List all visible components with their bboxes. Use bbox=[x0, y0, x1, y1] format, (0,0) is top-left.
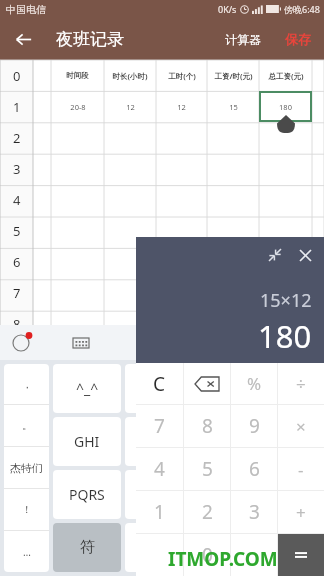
staticText: 6 bbox=[249, 456, 260, 482]
staticText: - bbox=[298, 458, 304, 481]
staticText: 杰特们 bbox=[10, 461, 43, 475]
staticText: 15 bbox=[229, 102, 238, 112]
button[interactable]: - bbox=[278, 448, 324, 490]
staticText: 5 bbox=[202, 456, 213, 482]
staticText: × bbox=[296, 415, 306, 438]
staticText: C bbox=[153, 371, 166, 397]
staticText: 时长(小时) bbox=[112, 71, 148, 81]
staticText: + bbox=[296, 501, 306, 524]
button[interactable]: 3 bbox=[0, 153, 324, 184]
staticText: 8 bbox=[13, 315, 21, 333]
staticText: 180 bbox=[258, 315, 312, 357]
button[interactable]: PQRS bbox=[53, 470, 121, 519]
button[interactable]: 7 bbox=[136, 405, 183, 447]
button[interactable]: 0 bbox=[0, 60, 324, 91]
staticText: 6 bbox=[13, 253, 21, 271]
button[interactable]: 6 bbox=[231, 448, 277, 490]
staticText: ÷ bbox=[296, 372, 306, 395]
staticText: 7 bbox=[154, 413, 165, 439]
staticText: 9 bbox=[249, 413, 260, 439]
staticText: 0 bbox=[13, 67, 21, 85]
button[interactable]: × bbox=[278, 405, 324, 447]
staticText: 0K/s bbox=[218, 3, 237, 15]
button[interactable] bbox=[125, 417, 320, 466]
button[interactable]: 8 bbox=[0, 308, 324, 339]
staticText: 2 bbox=[13, 129, 21, 147]
staticText: 1 bbox=[13, 98, 21, 116]
staticText: 工资/时(元) bbox=[214, 71, 253, 81]
button[interactable]: 2 bbox=[0, 122, 324, 153]
button[interactable]: ÷ bbox=[278, 363, 324, 404]
staticText: 时间段 bbox=[66, 71, 89, 80]
button[interactable]: 8 bbox=[184, 405, 230, 447]
button[interactable]: % bbox=[231, 363, 277, 404]
button[interactable]: IME logo bbox=[10, 332, 32, 354]
button[interactable]: 保存 bbox=[278, 27, 318, 51]
staticText: GHI bbox=[74, 432, 100, 451]
button[interactable]: 4 bbox=[136, 448, 183, 490]
staticText: 3 bbox=[13, 160, 21, 178]
button[interactable]: 4 bbox=[0, 184, 324, 215]
staticText: ！ bbox=[22, 503, 32, 516]
button[interactable]: 0 bbox=[184, 534, 230, 576]
button[interactable]: Voice input bbox=[130, 332, 152, 354]
staticText: 4 bbox=[154, 456, 165, 482]
staticText: 傍晚6:48 bbox=[284, 3, 320, 15]
staticText: 20-8 bbox=[70, 102, 86, 112]
staticText: ^_^ bbox=[76, 379, 99, 398]
button[interactable]: 杰特们 bbox=[4, 447, 49, 488]
button[interactable] bbox=[184, 363, 230, 404]
staticText: 3 bbox=[249, 499, 260, 525]
staticText: 15×12 bbox=[260, 288, 312, 313]
staticText: ITMOP.COM bbox=[168, 546, 278, 572]
staticText: … bbox=[23, 545, 31, 559]
button[interactable] bbox=[231, 534, 277, 576]
staticText: % bbox=[247, 372, 262, 395]
staticText: 5 bbox=[13, 222, 21, 240]
staticText: 保存 bbox=[285, 31, 311, 47]
button[interactable]: 符 bbox=[53, 523, 121, 572]
staticText: 夜班记录 bbox=[56, 29, 124, 50]
button[interactable] bbox=[125, 523, 320, 572]
button[interactable]: 7 bbox=[0, 277, 324, 308]
button[interactable] bbox=[259, 91, 312, 122]
button[interactable]: … bbox=[4, 531, 49, 572]
button[interactable]: 。 bbox=[4, 405, 49, 446]
button[interactable]: ^_^ bbox=[53, 364, 121, 413]
staticText: 2 bbox=[202, 499, 213, 525]
button[interactable]: 1 bbox=[0, 91, 324, 122]
button[interactable]: 5 bbox=[184, 448, 230, 490]
staticText: 8 bbox=[202, 413, 213, 439]
button[interactable] bbox=[125, 364, 320, 413]
button[interactable]: 计算器 bbox=[218, 28, 268, 51]
button[interactable] bbox=[136, 534, 183, 576]
button[interactable]: GHI bbox=[53, 417, 121, 466]
staticText: 0 bbox=[202, 542, 213, 568]
button[interactable]: 6 bbox=[0, 246, 324, 277]
button[interactable]: ， bbox=[4, 364, 49, 404]
button[interactable]: 3 bbox=[231, 491, 277, 533]
button[interactable]: 5 bbox=[0, 215, 324, 246]
staticText: 计算器 bbox=[225, 32, 261, 47]
staticText: 7 bbox=[13, 284, 21, 302]
staticText: 12 bbox=[126, 102, 135, 112]
staticText: 中国电信 bbox=[6, 3, 46, 16]
button[interactable]: 1 bbox=[136, 491, 183, 533]
button[interactable]: C bbox=[136, 363, 183, 404]
button[interactable] bbox=[125, 470, 320, 519]
staticText: 工时(个) bbox=[168, 71, 196, 81]
staticText: 1 bbox=[154, 499, 165, 525]
staticText: 12 bbox=[177, 102, 186, 112]
staticText: 。 bbox=[22, 419, 32, 432]
button[interactable]: Keyboard bbox=[70, 332, 92, 354]
staticText: 180 bbox=[279, 102, 292, 112]
button[interactable]: Close bbox=[295, 245, 315, 265]
button[interactable]: 9 bbox=[231, 405, 277, 447]
button[interactable]: 2 bbox=[184, 491, 230, 533]
button[interactable]: Back bbox=[8, 24, 38, 54]
button[interactable]: + bbox=[278, 491, 324, 533]
button[interactable]: Expand bbox=[265, 245, 285, 265]
staticText: 4 bbox=[13, 191, 21, 209]
button[interactable] bbox=[278, 534, 324, 576]
button[interactable]: ！ bbox=[4, 489, 49, 530]
